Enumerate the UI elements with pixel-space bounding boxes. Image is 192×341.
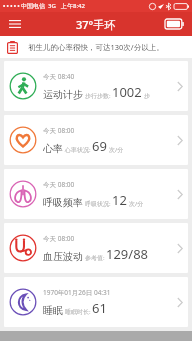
staticText: 今天 08:00	[43, 234, 75, 243]
staticText: 初生儿的心率很快，可达130次/分以上。	[28, 42, 164, 52]
staticText: 129/88	[106, 245, 149, 263]
button[interactable]: 今天 08:00	[4, 169, 188, 219]
staticText: 69	[92, 137, 107, 155]
staticText: 睡眠	[43, 304, 63, 317]
staticText: 今天 08:40	[43, 72, 75, 81]
staticText: 12	[112, 191, 127, 209]
button[interactable]: Menu	[0, 12, 30, 36]
staticText: 次/分	[109, 146, 124, 154]
staticText: 3G	[48, 2, 56, 10]
staticText: 心率	[43, 142, 63, 155]
button[interactable]: 初生儿的心率很快，可达130次/分以上。	[0, 36, 192, 58]
button[interactable]: 1970年01月26日 04:31	[4, 277, 188, 327]
button[interactable]: 今天 08:00	[4, 115, 188, 165]
staticText: 61	[92, 299, 107, 317]
staticText: 今天 08:00	[43, 126, 75, 135]
staticText: 参考值:	[85, 254, 105, 262]
staticText: 呼吸频率	[43, 196, 83, 209]
staticText: 心率状况:	[65, 146, 91, 154]
staticText: 步	[144, 92, 150, 100]
staticText: 1970年01月26日 04:31	[43, 288, 111, 297]
staticText: 运动计步	[43, 88, 83, 101]
staticText: 上午8:42	[61, 2, 85, 10]
staticText: 步行步数:	[85, 92, 111, 100]
button[interactable]: 今天 08:40	[4, 61, 188, 111]
button[interactable]: Battery	[165, 19, 184, 29]
button[interactable]: 今天 08:00	[4, 223, 188, 273]
staticText: 呼吸状况:	[85, 200, 111, 208]
staticText: 次/分	[129, 200, 144, 208]
staticText: 中国电信	[21, 2, 45, 10]
staticText: 今天 08:00	[43, 180, 75, 189]
staticText: 血压波动	[43, 250, 83, 263]
staticText: 37°手环	[76, 17, 116, 32]
staticText: 1002	[112, 83, 142, 101]
staticText: 睡眠时长:	[65, 308, 91, 316]
